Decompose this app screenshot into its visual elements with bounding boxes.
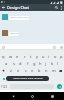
staticText: z — [10, 68, 12, 73]
staticText: i — [48, 54, 50, 59]
staticText: Lorem ipsum dolor sit — [10, 16, 29, 20]
staticText: m — [52, 68, 56, 73]
staticText: s — [13, 61, 15, 66]
staticText: Lorem ipsum dolor sit amet — [13, 77, 43, 80]
staticText: n — [45, 68, 48, 73]
staticText: j — [45, 61, 47, 66]
button[interactable]: Search — [53, 4, 59, 11]
staticText: b — [38, 68, 41, 73]
button[interactable]: Back — [0, 4, 7, 11]
button[interactable]: More options — [59, 4, 64, 11]
button[interactable]: d — [17, 60, 24, 67]
staticText: e — [16, 54, 19, 59]
button[interactable]: s — [10, 60, 17, 67]
staticText: d — [19, 61, 22, 66]
button[interactable]: Shift — [0, 67, 7, 74]
button[interactable]: v — [29, 67, 36, 74]
staticText: Consectetur — [10, 32, 19, 36]
staticText: v — [31, 68, 34, 73]
button[interactable]: g — [31, 60, 37, 67]
staticText: u — [42, 54, 45, 59]
button[interactable]: m — [50, 67, 57, 74]
button[interactable]: Attach — [59, 45, 63, 49]
staticText: l — [57, 61, 59, 66]
button[interactable]: Send — [55, 83, 64, 90]
staticText: h — [39, 61, 42, 66]
staticText: a — [5, 61, 8, 66]
staticText: c — [25, 68, 27, 73]
button[interactable]: w — [7, 53, 14, 60]
staticText: o — [54, 54, 57, 59]
button[interactable]: Consectetur — [9, 32, 19, 36]
button[interactable]: Backspace — [57, 67, 64, 74]
button[interactable]: x — [15, 67, 22, 74]
button[interactable]: Emoji — [1, 45, 5, 49]
button[interactable]: z — [7, 67, 15, 74]
button[interactable]: t — [28, 53, 34, 60]
staticText: f — [27, 61, 29, 66]
button[interactable]: r — [21, 53, 28, 60]
button[interactable]: u — [40, 53, 46, 60]
button[interactable]: y — [34, 53, 40, 60]
button[interactable]: n — [43, 67, 50, 74]
button[interactable]: Back — [6, 92, 20, 100]
staticText: y — [36, 54, 39, 59]
button[interactable]: b — [36, 67, 43, 74]
button[interactable]: p — [58, 53, 64, 60]
button[interactable]: q — [0, 53, 7, 60]
staticText: Design Chat — [7, 5, 29, 10]
staticText: ?123 — [1, 85, 8, 89]
button[interactable]: l — [55, 60, 61, 67]
staticText: k — [51, 61, 54, 66]
button[interactable]: Lorem ipsum dolor sit amet — [6, 76, 49, 81]
button[interactable]: ?123 — [0, 83, 9, 90]
staticText: w — [9, 54, 13, 59]
staticText: r — [24, 54, 26, 59]
button[interactable]: Home — [25, 92, 39, 100]
button[interactable]: k — [49, 60, 55, 67]
button[interactable]: j — [43, 60, 49, 67]
staticText: g — [33, 61, 36, 66]
button[interactable]: Lorem ipsum dolor sit — [9, 16, 29, 20]
button[interactable]: c — [22, 67, 29, 74]
button[interactable]: i — [46, 53, 52, 60]
button[interactable]: o — [52, 53, 58, 60]
staticText: p — [60, 54, 63, 59]
button[interactable]: Recent apps — [45, 92, 59, 100]
staticText: x — [17, 68, 20, 73]
button[interactable]: h — [37, 60, 43, 67]
button[interactable]: e — [14, 53, 21, 60]
button[interactable]: f — [24, 60, 31, 67]
staticText: t — [30, 54, 32, 59]
button[interactable]: a — [3, 60, 10, 67]
button[interactable]: Sticker — [52, 45, 56, 49]
staticText: q — [2, 54, 5, 59]
